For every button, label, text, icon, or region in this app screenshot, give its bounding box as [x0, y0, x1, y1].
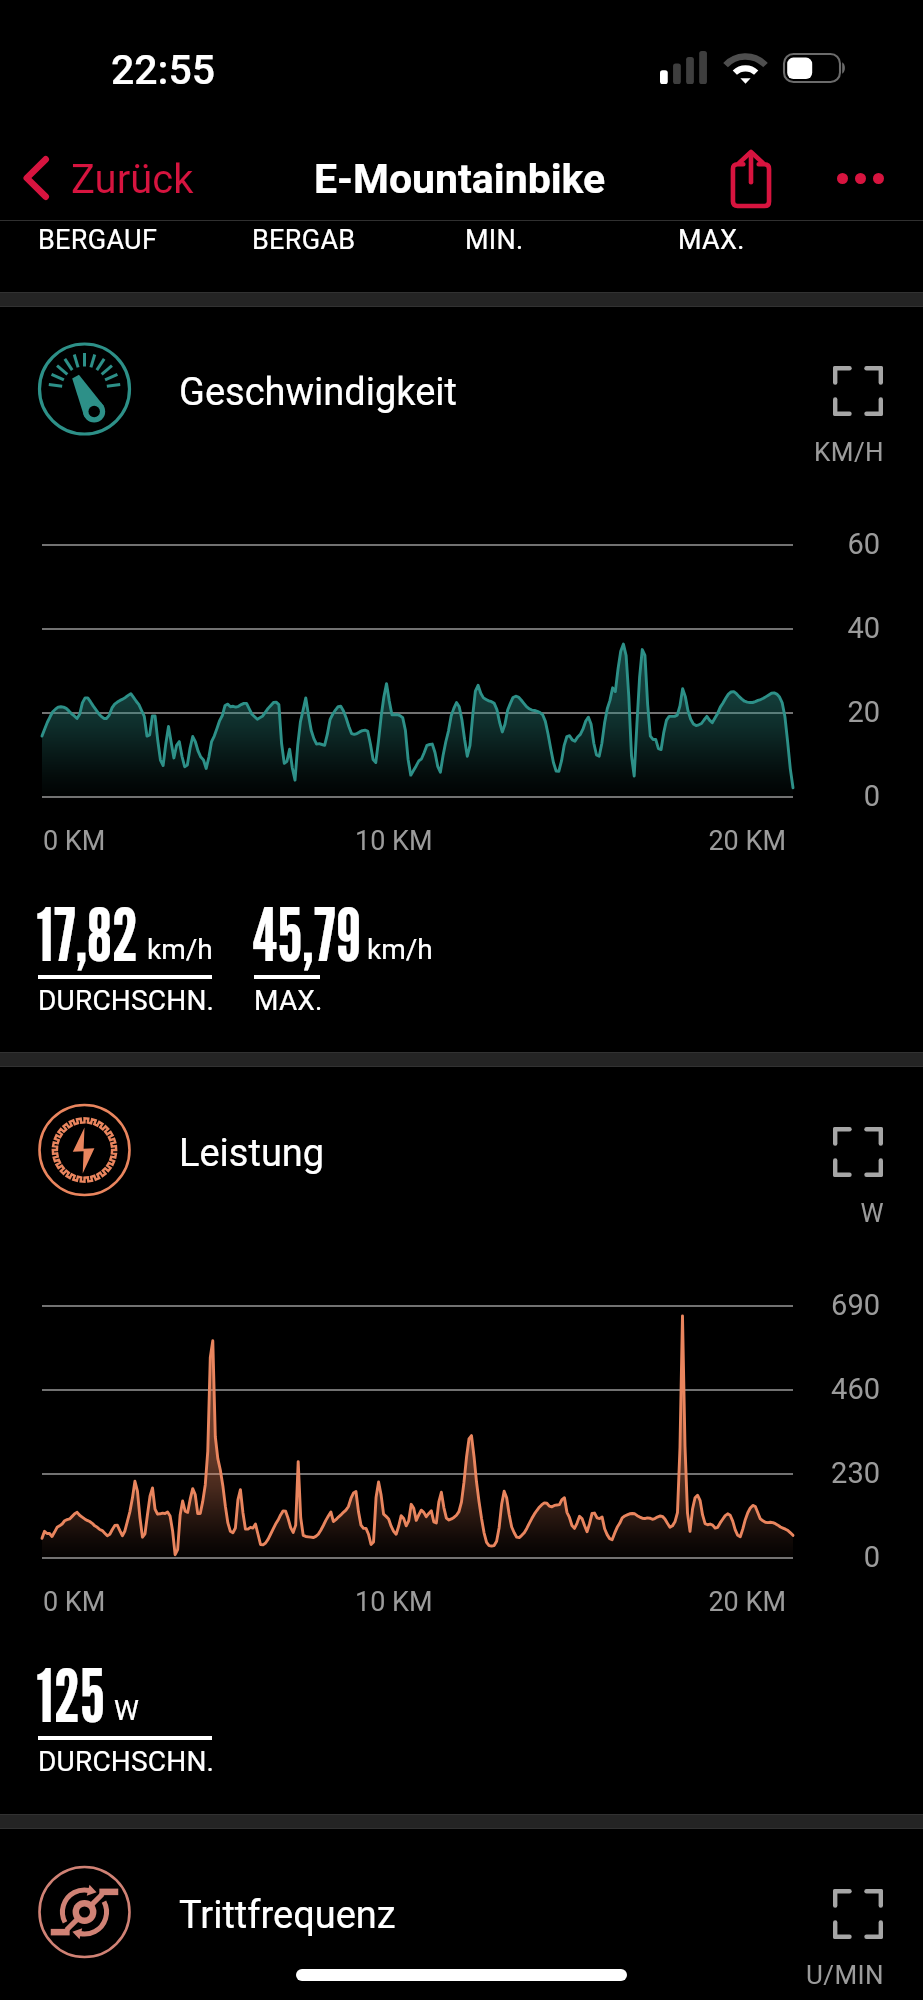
staticText: Zurück	[71, 156, 194, 203]
staticText: DURCHSCHN.	[38, 1745, 215, 1778]
staticText: U/MIN	[600, 1960, 884, 1990]
staticText: 0 KM	[43, 825, 106, 857]
staticText: 20	[600, 695, 880, 729]
staticText: KM/H	[600, 437, 884, 467]
staticText: 20 KM	[600, 825, 786, 857]
button[interactable]: Vollbild	[833, 1889, 883, 1939]
staticText: Leistung	[179, 1131, 325, 1176]
staticText: 10 KM	[355, 1586, 433, 1618]
staticText: 17,82	[36, 890, 138, 978]
staticText: km/h	[147, 933, 213, 966]
staticText: 0	[600, 1540, 880, 1574]
staticText: 460	[600, 1372, 880, 1406]
staticText: W	[114, 1694, 139, 1727]
staticText: 40	[600, 611, 880, 645]
button[interactable]: Mehr	[823, 141, 897, 215]
staticText: BERGAB	[252, 224, 356, 256]
staticText: 22:55	[111, 46, 216, 94]
button[interactable]: Vollbild	[833, 366, 883, 416]
staticText: E-Mountainbike	[314, 155, 606, 203]
button[interactable]: Teilen	[713, 140, 789, 216]
staticText: 125	[36, 1651, 105, 1739]
staticText: Trittfrequenz	[179, 1893, 396, 1938]
staticText: 60	[600, 527, 880, 561]
staticText: 10 KM	[355, 825, 433, 857]
button[interactable]: Zurück	[14, 146, 206, 210]
staticText: 45,79	[252, 890, 361, 978]
staticText: km/h	[367, 933, 433, 966]
staticText: W	[600, 1198, 884, 1228]
button[interactable]: Vollbild	[833, 1127, 883, 1177]
staticText: MAX.	[254, 984, 323, 1017]
staticText: 230	[600, 1456, 880, 1490]
staticText: 0	[600, 779, 880, 813]
staticText: MAX.	[678, 224, 745, 256]
staticText: DURCHSCHN.	[38, 984, 215, 1017]
staticText: 20 KM	[600, 1586, 786, 1618]
staticText: 0 KM	[43, 1586, 106, 1618]
staticText: MIN.	[465, 224, 524, 256]
staticText: 690	[600, 1288, 880, 1322]
staticText: Geschwindigkeit	[179, 370, 457, 415]
staticText: BERGAUF	[38, 224, 158, 256]
